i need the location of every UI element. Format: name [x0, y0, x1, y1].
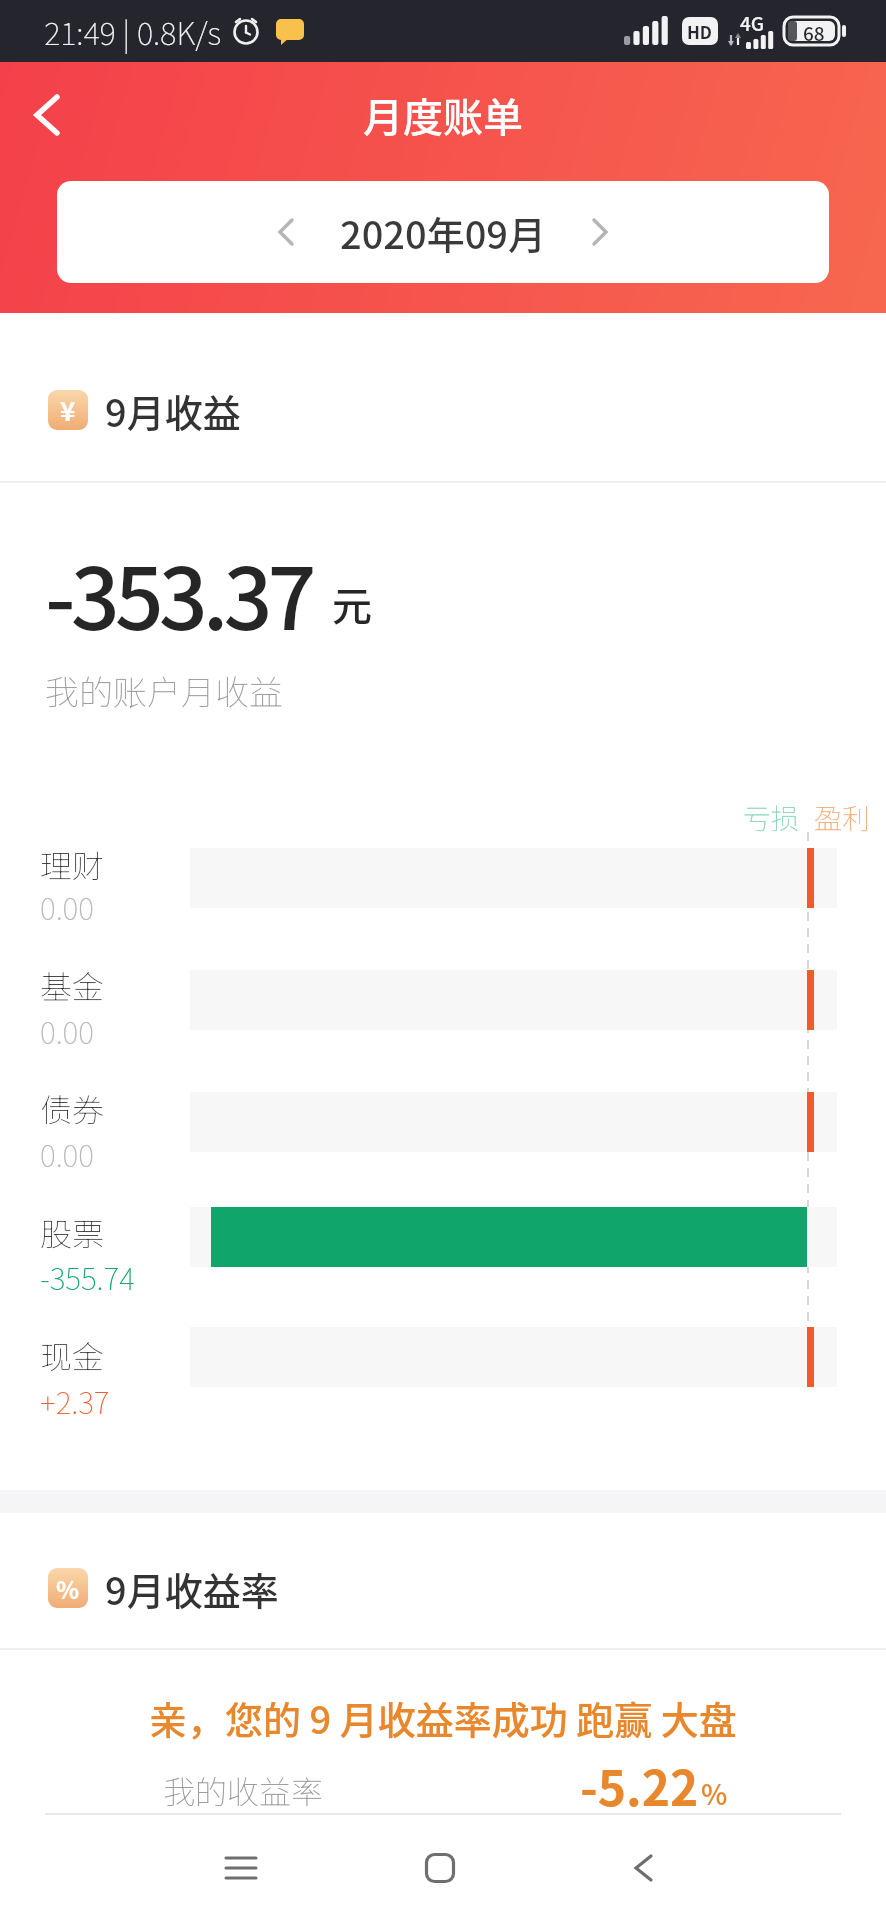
staticText: 9月收益 [105, 383, 241, 438]
staticText: HD [687, 19, 713, 44]
staticText: 理财 [40, 841, 105, 887]
staticText: 2020年09月 [340, 205, 546, 260]
staticText: 亲，您的 9 月收益率成功 跑赢 大盘 [149, 1690, 737, 1745]
staticText: -355.74 [40, 1255, 135, 1298]
staticText: 月度账单 [363, 86, 523, 144]
button[interactable] [191, 1830, 291, 1906]
staticText: 21:49 | 0.8K/s [44, 9, 222, 54]
staticText: % [701, 1773, 728, 1814]
staticText: 基金 [40, 962, 105, 1008]
staticText: 68 [803, 19, 825, 47]
staticText: 盈利 [814, 797, 871, 838]
button[interactable] [14, 82, 78, 148]
staticText: 9月收益率 [105, 1561, 279, 1616]
staticText: ¥ [60, 391, 76, 429]
staticText: 4G [740, 9, 765, 37]
staticText: 亏损 [743, 797, 800, 838]
staticText: 我的收益率 [163, 1767, 324, 1813]
staticText: 0.00 [40, 1009, 94, 1052]
button[interactable] [593, 1830, 693, 1906]
staticText: 债券 [40, 1085, 105, 1131]
staticText: 我的账户月收益 [45, 666, 283, 715]
button[interactable] [390, 1830, 490, 1906]
staticText: % [56, 1571, 80, 1606]
staticText: 现金 [40, 1332, 105, 1378]
staticText: 0.00 [40, 885, 94, 928]
staticText: 元 [332, 575, 372, 633]
staticText: 0.00 [40, 1132, 94, 1175]
staticText: -353.37 [45, 530, 312, 655]
button[interactable]: 2020年09月 [57, 181, 829, 283]
staticText: 股票 [40, 1209, 105, 1255]
staticText: +2.37 [40, 1379, 110, 1422]
staticText: -5.22 [580, 1750, 699, 1820]
